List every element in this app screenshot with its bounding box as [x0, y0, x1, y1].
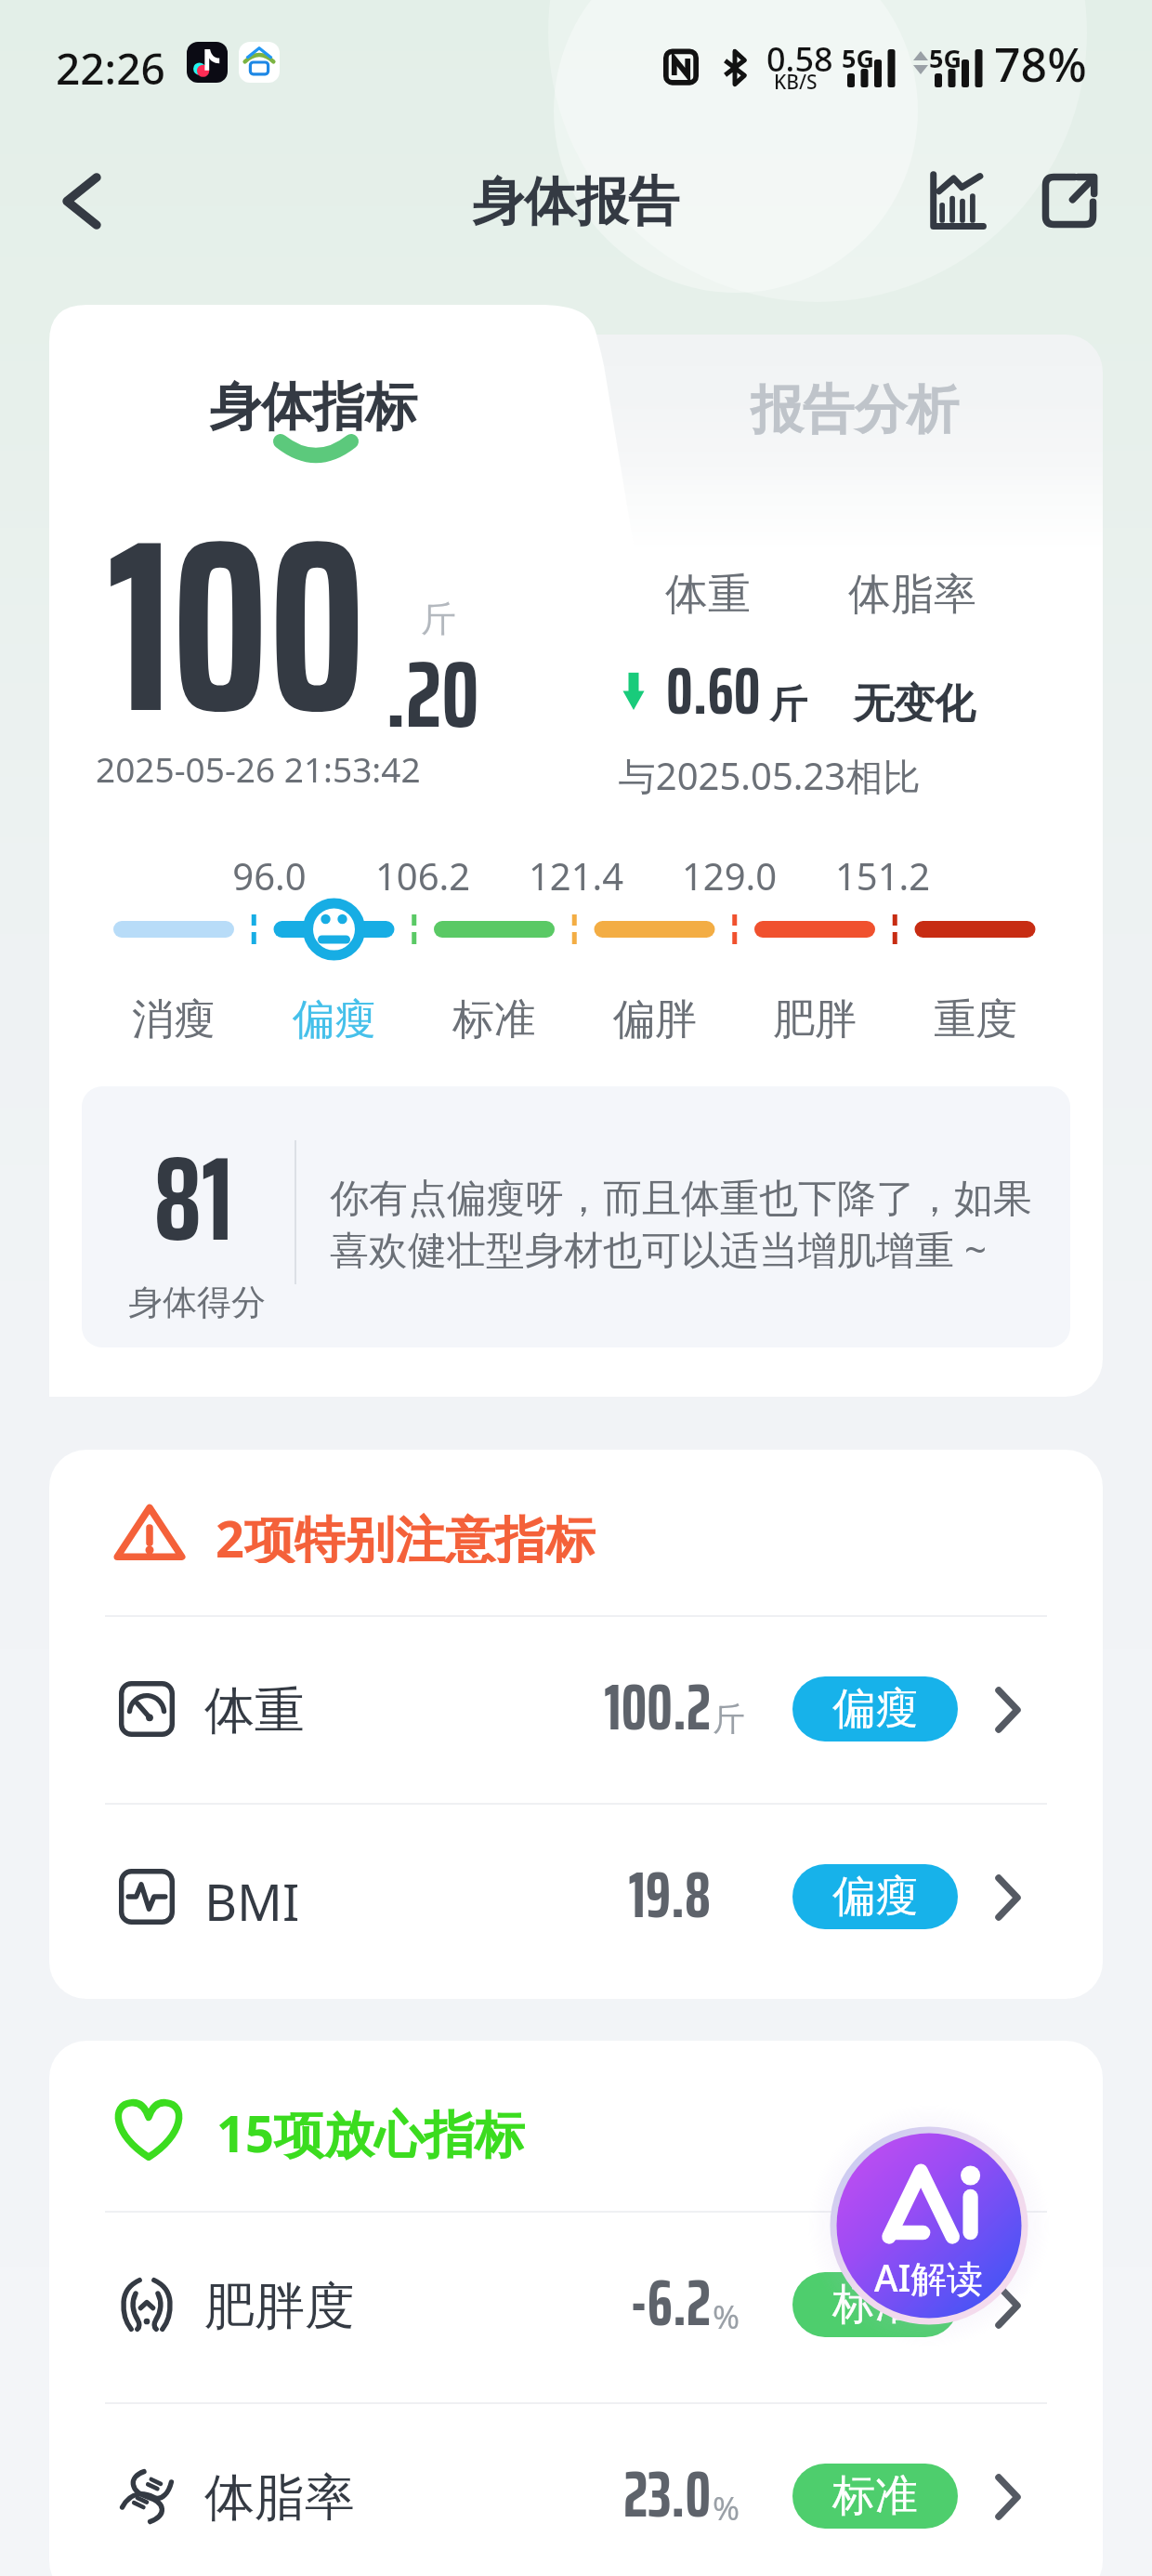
staticText: 121.4	[492, 850, 660, 900]
staticText: 斤	[769, 681, 807, 729]
staticText: 报告分析	[607, 377, 1103, 443]
button[interactable]: 肥胖度	[49, 2211, 1103, 2402]
staticText: 5G	[929, 41, 962, 75]
staticText: -6.2	[430, 2253, 711, 2354]
staticText: 78%	[994, 33, 1087, 96]
staticText: 100.2	[430, 1657, 711, 1758]
staticText: 2025-05-26 21:53:42	[96, 745, 421, 792]
staticText: 标准	[832, 2469, 918, 2523]
staticText: 5G	[842, 41, 874, 75]
other: AI 解读	[807, 2104, 1051, 2347]
staticText: 无变化	[807, 678, 1021, 729]
staticText: 偏瘦	[832, 1870, 918, 1924]
staticText: 100	[107, 435, 366, 817]
staticText: 106.2	[339, 850, 506, 900]
staticText: 体重	[204, 1679, 305, 1742]
staticText: 身体得分	[104, 1281, 290, 1324]
staticText: 肥胖	[731, 993, 898, 1046]
staticText: 151.2	[799, 850, 966, 900]
staticText: 标准	[832, 2278, 918, 2332]
staticText: 体脂率	[805, 568, 1019, 622]
staticText: 体脂率	[204, 2466, 355, 2530]
staticText: 斤	[421, 597, 456, 641]
staticText: 偏瘦	[251, 993, 418, 1046]
staticText: 96.0	[186, 850, 353, 900]
staticText: 偏瘦	[832, 1682, 918, 1736]
staticText: KB/S	[774, 69, 818, 96]
staticText: %	[713, 2294, 740, 2339]
staticText: 0.58	[766, 36, 833, 82]
staticText: 15项放心指标	[216, 2098, 525, 2162]
staticText: 重度	[892, 993, 1059, 1046]
button[interactable]: Back	[26, 145, 137, 256]
staticText: 81	[100, 1106, 286, 1292]
button[interactable]	[807, 2104, 1051, 2347]
staticText: 你有点偏瘦呀，而且体重也下降了，如果 喜欢健壮型身材也可以适当增肌增重 ~	[330, 1175, 1070, 1275]
staticText: 22:26	[56, 39, 165, 98]
button[interactable]: 体脂率	[49, 2402, 1103, 2576]
staticText: 身体指标	[127, 375, 499, 440]
staticText: 消瘦	[90, 993, 257, 1046]
staticText: 与2025.05.23相比	[583, 750, 955, 801]
staticText: 身体报告	[472, 169, 680, 235]
staticText: 斤	[713, 1699, 745, 1740]
staticText: 偏胖	[571, 993, 739, 1046]
staticText: %	[713, 2486, 740, 2530]
staticText: 标准	[411, 993, 578, 1046]
staticText: 体重	[610, 568, 805, 622]
button[interactable]: 体重	[49, 1615, 1103, 1807]
button[interactable]: Share	[1014, 145, 1125, 256]
staticText: BMI	[204, 1867, 300, 1936]
button[interactable]: Trend chart	[900, 145, 1012, 256]
staticText: AI解读	[874, 2253, 984, 2302]
button[interactable]: 报告分析	[607, 335, 1103, 493]
staticText: 19.8	[430, 1845, 711, 1946]
staticText: 2项特别注意指标	[216, 1504, 596, 1563]
button[interactable]: 身体指标	[49, 305, 607, 491]
staticText: 0.60	[666, 637, 761, 743]
staticText: .20	[386, 620, 479, 768]
button[interactable]: BMI	[49, 1803, 1103, 1994]
staticText: 肥胖度	[204, 2275, 355, 2338]
staticText: 23.0	[430, 2444, 711, 2545]
staticText: 129.0	[646, 850, 813, 900]
